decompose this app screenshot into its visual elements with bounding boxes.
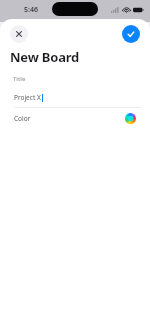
button[interactable]: Project X bbox=[8, 88, 142, 107]
other: Pick colour bbox=[125, 113, 136, 124]
button[interactable]: Save board bbox=[122, 25, 140, 43]
staticText: New Board bbox=[10, 48, 80, 66]
staticText: 5:46 bbox=[24, 5, 38, 15]
button[interactable]: Color bbox=[8, 108, 142, 128]
staticText: Color bbox=[14, 114, 31, 123]
staticText: Project X bbox=[14, 93, 41, 102]
button[interactable]: Close bbox=[10, 25, 28, 43]
staticText: Title bbox=[13, 75, 26, 83]
